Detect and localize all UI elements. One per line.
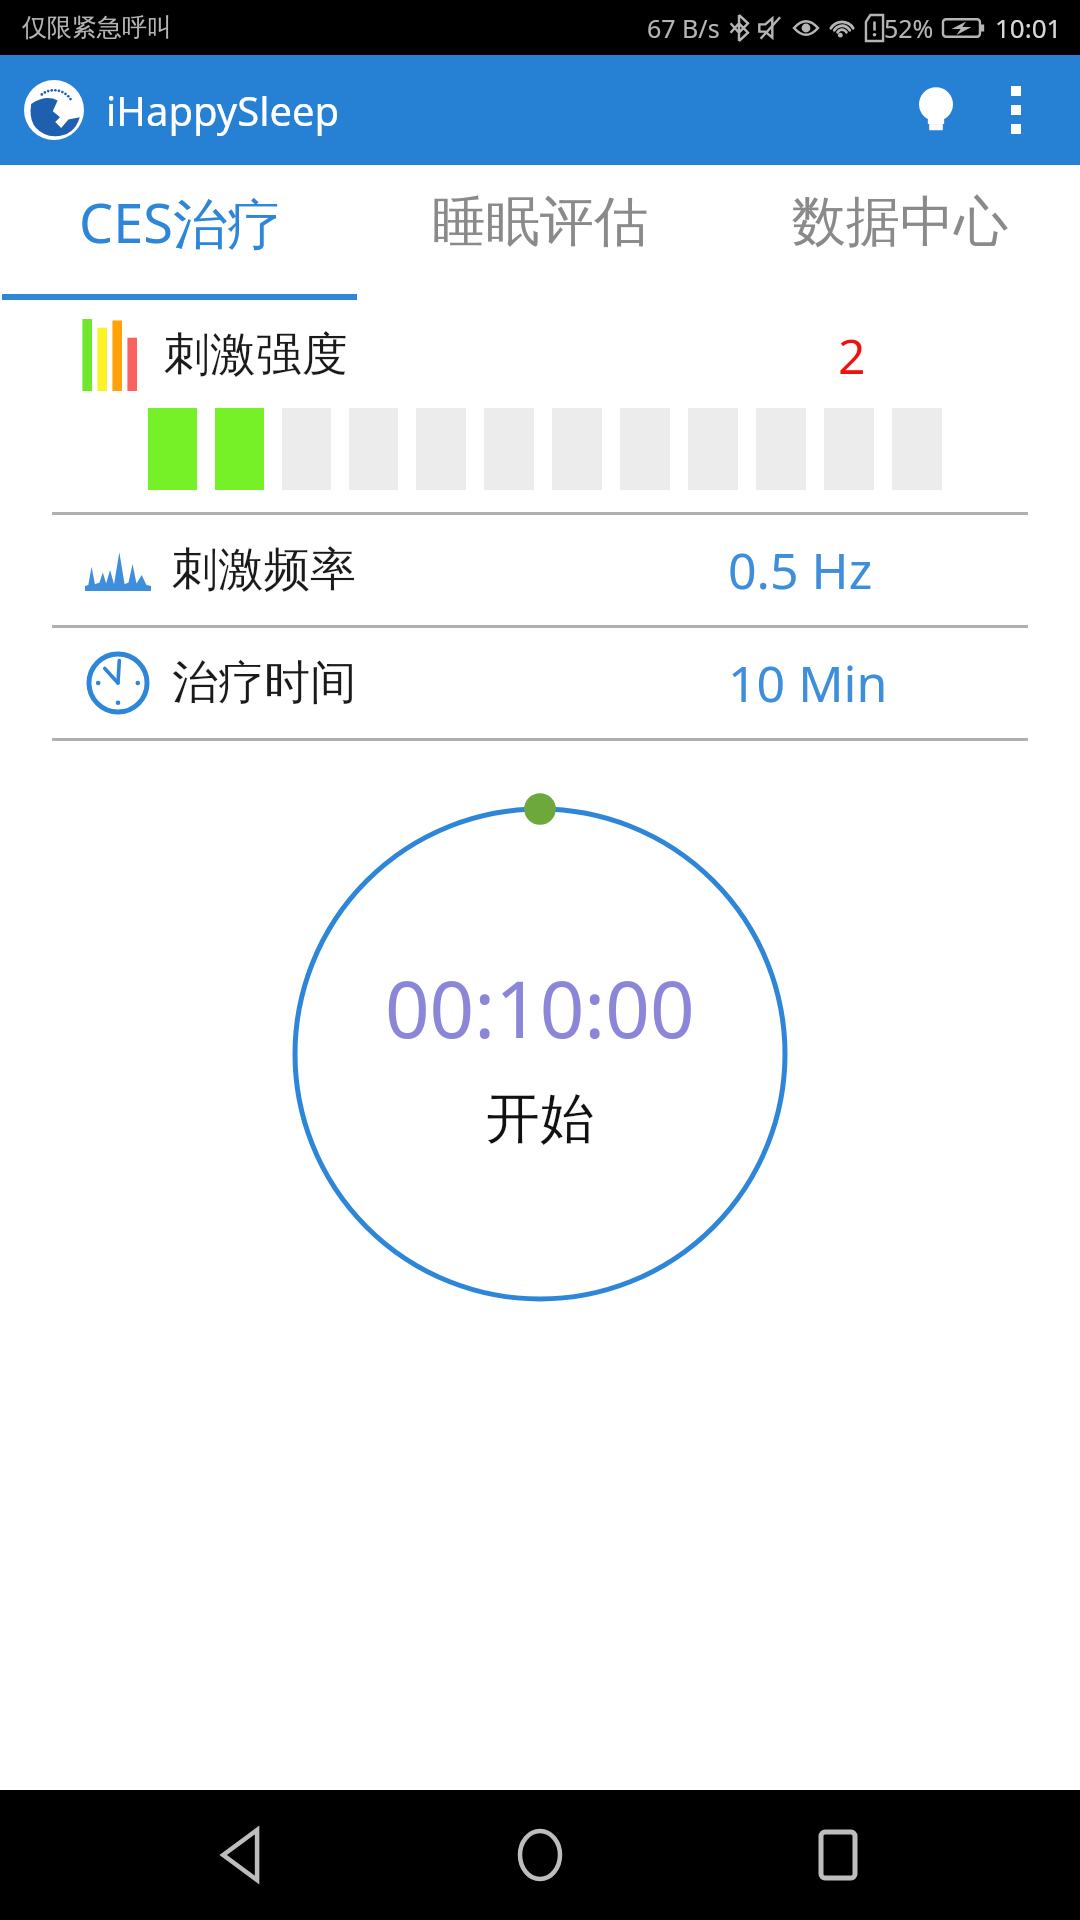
staticText: 仅限紧急呼叫: [22, 12, 172, 43]
button[interactable]: 睡眠评估: [360, 165, 720, 300]
button[interactable]: 数据中心: [720, 165, 1080, 300]
button[interactable]: 刺激频率: [52, 515, 1028, 625]
button[interactable]: More options: [976, 70, 1056, 150]
staticText: 52%: [884, 11, 934, 45]
staticText: 0.5 Hz: [728, 536, 873, 604]
staticText: 10 Min: [728, 649, 888, 717]
button[interactable]: [148, 408, 960, 490]
button[interactable]: CES治疗: [0, 165, 360, 300]
staticText: 治疗时间: [172, 654, 356, 712]
staticText: iHappySleep: [106, 83, 340, 137]
staticText: 刺激强度: [164, 326, 348, 384]
staticText: 开始: [486, 1085, 594, 1153]
staticText: 睡眠评估: [432, 188, 648, 256]
staticText: 00:10:00: [385, 955, 695, 1061]
staticText: 数据中心: [792, 188, 1008, 256]
staticText: 刺激频率: [172, 541, 356, 599]
staticText: 2: [838, 323, 866, 388]
button[interactable]: Light: [896, 70, 976, 150]
button[interactable]: 治疗时间: [52, 628, 1028, 738]
staticText: CES治疗: [79, 185, 281, 259]
button[interactable]: Recents: [783, 1800, 893, 1910]
staticText: 10:01: [995, 10, 1062, 45]
button[interactable]: 00:10:00: [285, 799, 795, 1309]
button[interactable]: App logo: [24, 80, 84, 140]
button[interactable]: 刺激强度: [52, 314, 1028, 396]
button[interactable]: Home: [485, 1800, 595, 1910]
staticText: 67 B/s: [647, 11, 720, 45]
button[interactable]: Back: [188, 1800, 298, 1910]
